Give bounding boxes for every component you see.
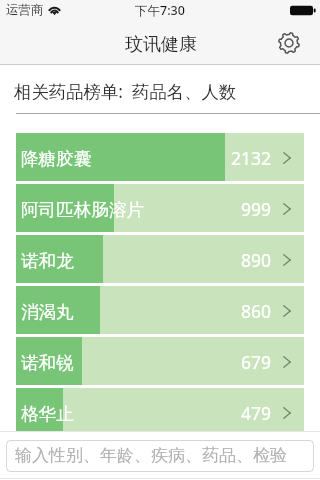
staticText: 消渴丸 <box>21 301 74 323</box>
staticText: 999 <box>211 197 271 221</box>
button[interactable]: 消渴丸 <box>16 286 304 334</box>
button[interactable]: 格华止 <box>16 388 304 431</box>
staticText: 479 <box>211 401 271 425</box>
staticText: 860 <box>211 299 271 323</box>
staticText: 诺和锐 <box>21 352 74 374</box>
staticText: 运营商 <box>6 2 44 18</box>
button[interactable]: 诺和锐 <box>16 337 304 385</box>
staticText: 2132 <box>211 146 271 170</box>
staticText: 890 <box>211 248 271 272</box>
staticText: 玟讯健康 <box>125 33 197 56</box>
staticText: 阿司匹林肠溶片 <box>21 199 145 221</box>
staticText: 相关药品榜单: 药品名、人数 <box>14 79 237 103</box>
button[interactable]: 阿司匹林肠溶片 <box>16 184 304 232</box>
staticText: 降糖胶囊 <box>21 148 92 170</box>
staticText: 输入性别、年龄、疾病、药品、检验 <box>15 445 287 466</box>
staticText: 下午7:30 <box>135 2 185 19</box>
button[interactable]: 诺和龙 <box>16 235 304 283</box>
staticText: 诺和龙 <box>21 250 74 272</box>
button[interactable]: 降糖胶囊 <box>16 133 304 181</box>
staticText: 格华止 <box>21 403 74 425</box>
staticText: 679 <box>211 350 271 374</box>
button[interactable]: Settings <box>276 30 302 56</box>
button[interactable]: 输入性别、年龄、疾病、药品、检验 <box>6 440 314 472</box>
